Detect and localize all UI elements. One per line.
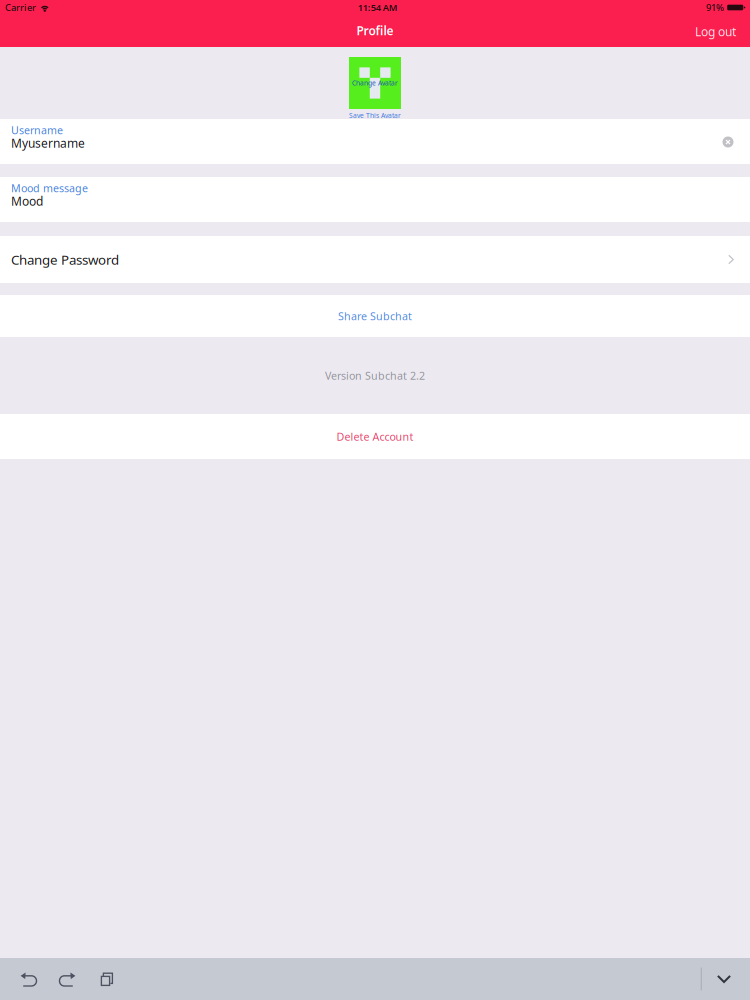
button[interactable]: Paste [88,963,126,995]
button[interactable]: Username [0,119,750,164]
staticText: Username [11,123,63,137]
staticText: Carrier [5,1,36,14]
staticText: Log out [695,23,736,39]
staticText: Delete Account [336,429,413,444]
staticText: Save This Avatar [349,111,401,120]
button[interactable]: Mood message [0,177,750,222]
staticText: Change Password [11,251,119,268]
button[interactable]: Delete Account [0,414,750,459]
staticText: Mood [11,193,43,209]
button[interactable]: Change Password [0,236,750,283]
staticText: 91% [706,1,724,14]
staticText: Share Subchat [338,309,412,323]
button[interactable]: Redo [48,963,88,995]
button[interactable]: Dismiss keyboard [702,963,750,995]
button[interactable]: Undo [0,963,48,995]
staticText: Myusername [11,135,85,151]
staticText: Version Subchat 2.2 [325,368,425,383]
button[interactable]: Change Avatar [349,57,401,109]
staticText: Mood message [11,181,88,195]
button[interactable]: Save This Avatar [349,109,401,120]
staticText: Profile [356,22,393,38]
button[interactable]: Share Subchat [0,295,750,337]
staticText: Change Avatar [352,79,398,87]
staticText: 11:54 AM [358,1,398,14]
button[interactable]: Log out [688,16,743,46]
